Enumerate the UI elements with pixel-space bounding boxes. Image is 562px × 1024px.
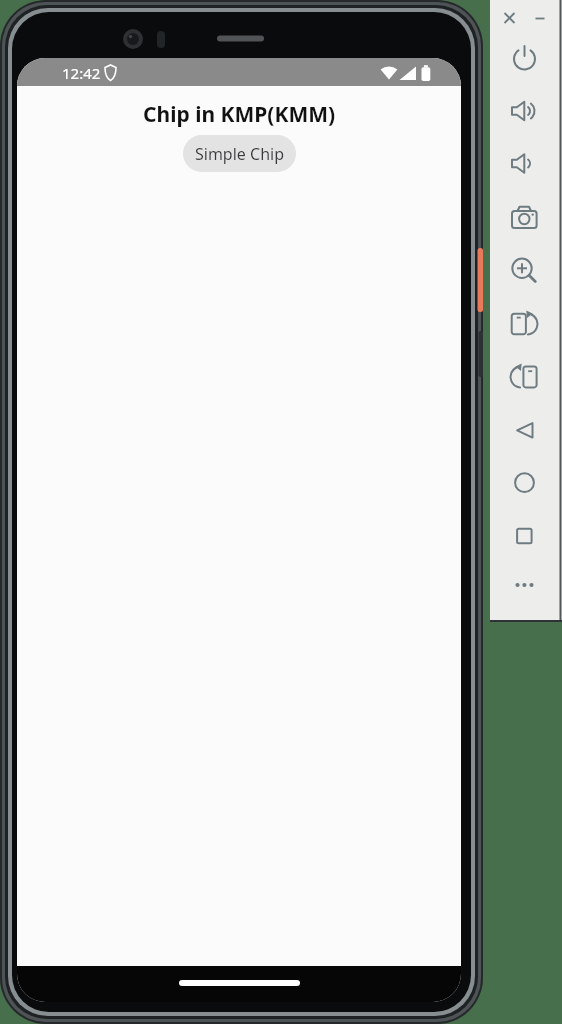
button[interactable] [504,39,544,79]
button[interactable] [504,516,544,556]
staticText: Chip in KMP(KMM) [143,100,336,129]
button[interactable] [504,196,544,236]
button[interactable] [504,249,544,289]
button[interactable] [504,410,544,450]
button[interactable] [499,8,520,29]
staticText: Simple Chip [195,143,284,165]
button[interactable] [504,302,544,342]
button[interactable] [504,143,544,183]
button[interactable] [504,463,544,503]
button[interactable] [504,91,544,131]
button[interactable] [504,569,544,609]
button[interactable]: Simple Chip [183,135,296,172]
staticText: 12:42 [62,63,101,83]
button[interactable] [504,357,544,397]
button[interactable] [529,8,550,29]
